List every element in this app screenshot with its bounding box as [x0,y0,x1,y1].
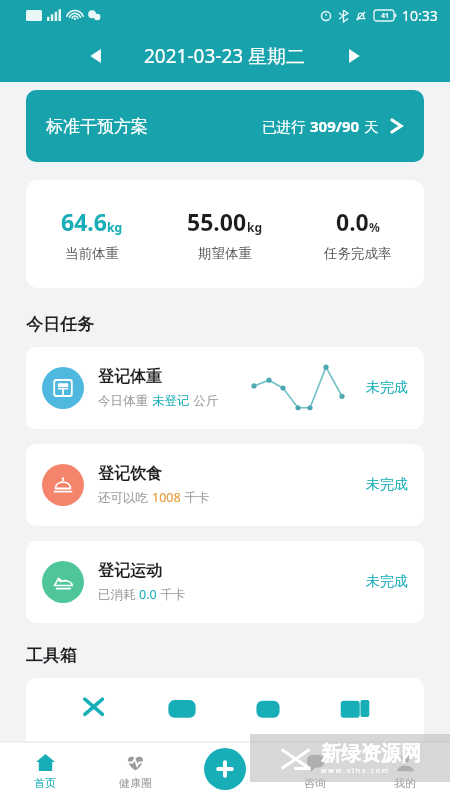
staticText: 新绿资源网 [321,741,421,766]
staticText: 标准干预方案 [46,116,148,137]
staticText: 已进行 [262,116,310,136]
button[interactable]: Add [204,748,246,790]
staticText: 0.0 [139,586,157,603]
staticText: 未登记 [152,393,190,409]
staticText: kg [247,219,263,235]
staticText: 公斤 [190,392,219,409]
staticText: 309/90 [310,116,360,136]
staticText: 天 [360,116,379,136]
button[interactable]: Next day [332,34,376,78]
staticText: 还可以吃 [98,489,152,506]
staticText: 登记运动 [98,561,162,581]
staticText: 千卡 [157,586,186,603]
staticText: 健康圈 [119,776,152,790]
staticText: 0.0 [336,206,369,237]
staticText: 期望体重 [198,245,252,262]
button[interactable]: 我的 [360,742,450,800]
button[interactable]: Tool 2 [165,694,199,728]
staticText: 登记饮食 [98,464,162,484]
staticText: 55.00 [187,206,247,237]
staticText: kg [107,219,123,235]
staticText: 未完成 [366,573,408,591]
staticText: 64.6 [61,206,107,237]
button[interactable]: 登记体重 [26,347,424,429]
button[interactable]: 首页 [0,742,90,800]
staticText: 2021-03-23 星期二 [144,43,306,69]
staticText: 41 [381,11,390,21]
staticText: 工具箱 [26,645,77,666]
staticText: 首页 [34,776,56,790]
staticText: 任务完成率 [324,245,392,262]
staticText: 1008 [152,489,181,506]
button[interactable]: 登记饮食 [26,444,424,526]
button[interactable]: Tool 1 [78,694,112,728]
staticText: 我的 [394,776,416,790]
button[interactable]: Tool 4 [338,694,372,728]
staticText: 登记体重 [98,367,162,387]
staticText: w w w . x l h s . c o m [321,766,389,776]
staticText: 未完成 [366,476,408,494]
button[interactable]: Previous day [74,34,118,78]
button[interactable]: 标准干预方案 [26,90,424,162]
staticText: 今日任务 [26,314,94,335]
button[interactable]: 登记运动 [26,541,424,623]
staticText: % [369,219,380,235]
staticText: 已消耗 [98,586,139,603]
button[interactable]: 健康圈 [90,742,180,800]
staticText: 当前体重 [65,245,119,262]
staticText: 千卡 [181,489,210,506]
button[interactable]: 咨询 [270,742,360,800]
staticText: 10:33 [402,6,438,25]
staticText: 今日体重 [98,392,152,409]
staticText: 未完成 [366,379,408,397]
staticText: 咨询 [304,776,326,790]
button[interactable]: Tool 3 [251,694,285,728]
